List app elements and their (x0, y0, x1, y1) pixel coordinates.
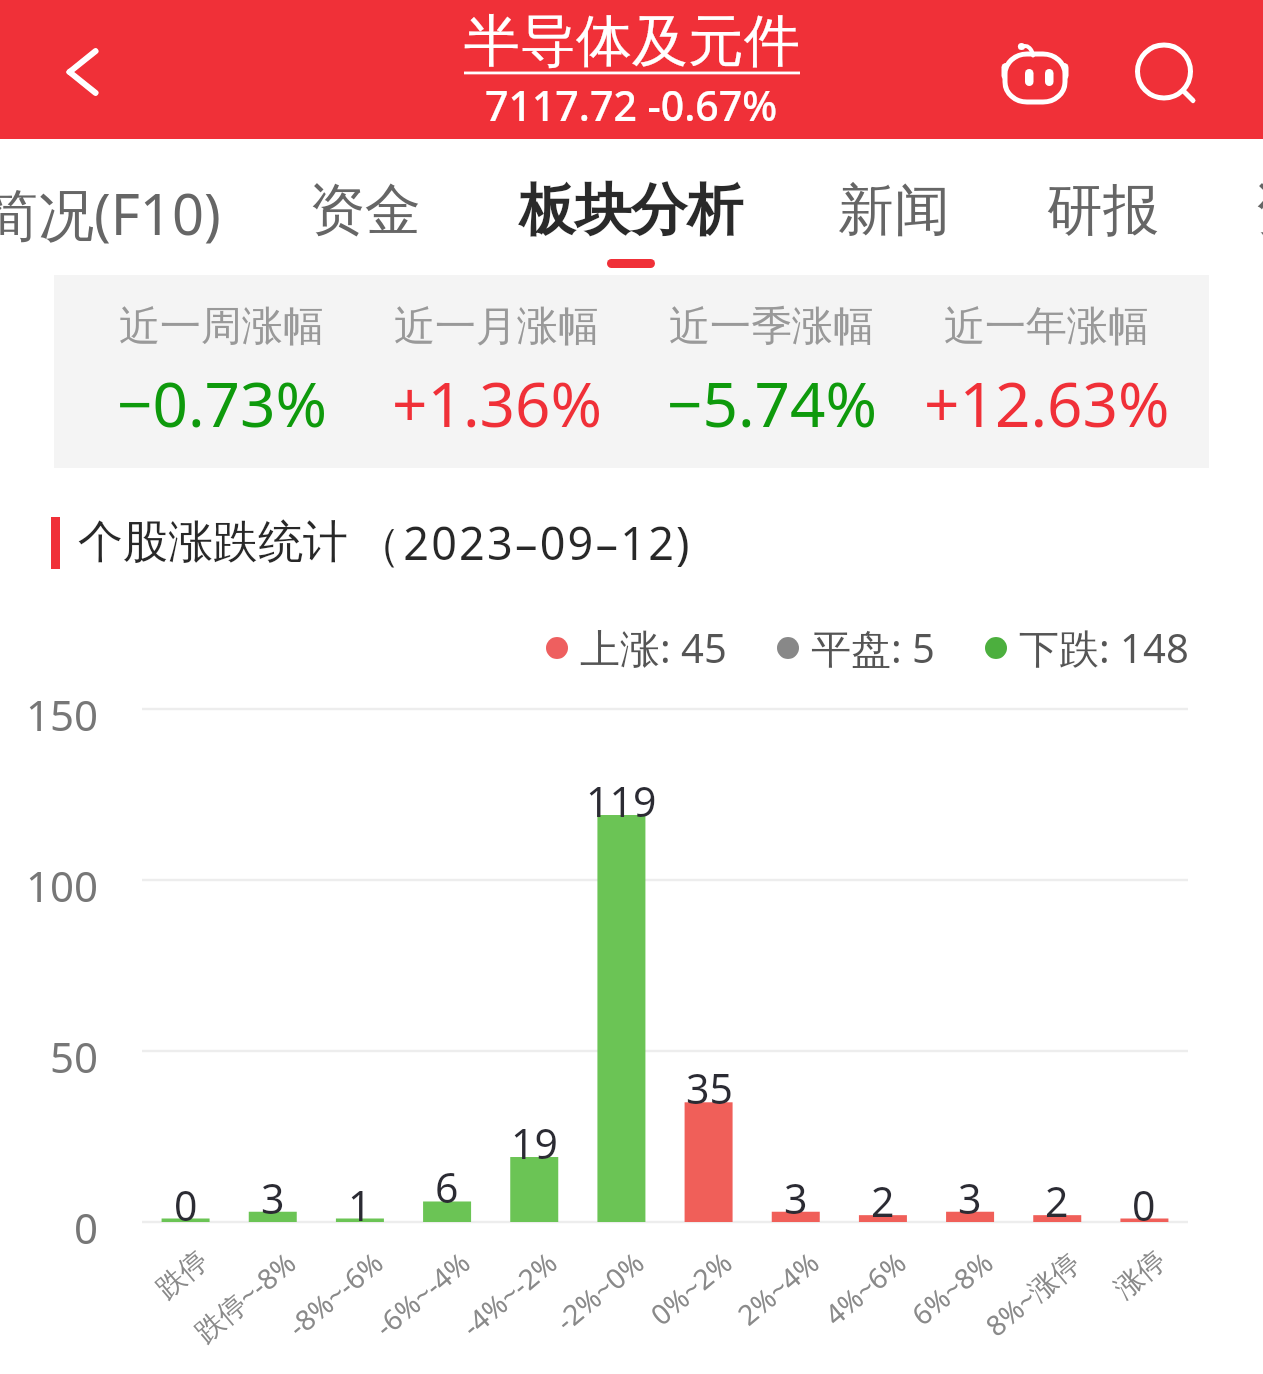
staticText: −0.73% (117, 361, 327, 445)
staticText: -4%~-2% (453, 1243, 564, 1345)
staticText: 150 (25, 686, 98, 743)
button[interactable]: 1 (300, 1177, 420, 1233)
staticText: 上涨: 45 (580, 620, 727, 675)
button[interactable]: 平盘: 5 (777, 620, 935, 675)
staticText: 涨停 (1107, 1243, 1172, 1306)
staticText: 跌停~-8% (186, 1243, 303, 1350)
staticText: 0 (174, 1177, 198, 1233)
staticText: 19 (511, 1115, 558, 1171)
button[interactable]: 近一月涨幅 (359, 301, 634, 445)
button[interactable]: 个股涨跌统计 (51, 512, 692, 573)
staticText: 7117.72 -0.67% (485, 77, 778, 133)
staticText: -6%~-4% (366, 1243, 477, 1345)
button[interactable]: 近一年涨幅 (909, 301, 1184, 445)
staticText: 119 (586, 773, 657, 829)
staticText: 研报 (1047, 175, 1159, 246)
staticText: 1 (348, 1177, 372, 1233)
button[interactable]: 3 (213, 1170, 333, 1226)
button[interactable]: Back (40, 30, 124, 114)
button[interactable]: 板块分析 (519, 139, 743, 268)
staticText: 6 (435, 1159, 459, 1215)
staticText: 2 (1045, 1173, 1069, 1229)
staticText: 0 (73, 1199, 98, 1256)
staticText: 板块分析 (519, 175, 743, 246)
staticText: 简况(F10) (0, 175, 221, 251)
button[interactable]: AI assistant (985, 27, 1085, 119)
staticText: 50 (49, 1028, 98, 1085)
staticText: 3 (958, 1170, 982, 1226)
button[interactable]: 研报 (1047, 139, 1159, 259)
button[interactable]: 2 (997, 1173, 1117, 1229)
button[interactable]: 3 (736, 1170, 856, 1226)
button[interactable]: 0 (1084, 1177, 1204, 1233)
staticText: 0%~2% (642, 1243, 739, 1333)
button[interactable]: 19 (474, 1115, 594, 1171)
staticText: 新闻 (838, 175, 950, 246)
staticText: 100 (25, 857, 98, 914)
button[interactable]: 下跌: 148 (985, 620, 1189, 675)
staticText: 近一周涨幅 (119, 301, 324, 353)
staticText: 2 (871, 1173, 895, 1229)
staticText: 4%~6% (816, 1243, 913, 1333)
staticText: +1.36% (392, 361, 602, 445)
button[interactable]: 新闻 (838, 139, 950, 259)
staticText: 35 (686, 1060, 733, 1116)
button[interactable]: Search (1120, 26, 1210, 118)
button[interactable]: 近一季涨幅 (634, 301, 909, 445)
button[interactable]: 119 (561, 773, 681, 829)
staticText: 3 (784, 1170, 808, 1226)
staticText: 近一月涨幅 (394, 301, 599, 353)
button[interactable]: 0 (126, 1177, 246, 1233)
staticText: 3 (261, 1170, 285, 1226)
button[interactable]: 6 (387, 1159, 507, 1215)
staticText: -2%~0% (547, 1243, 651, 1339)
button[interactable]: 资 (1254, 139, 1263, 259)
staticText: （2023–09–12) (356, 512, 692, 573)
button[interactable]: 简况(F10) (0, 139, 221, 264)
staticText: −5.74% (667, 361, 877, 445)
staticText: -8%~-6% (279, 1243, 390, 1345)
staticText: +12.63% (924, 361, 1170, 445)
staticText: 下跌: 148 (1019, 620, 1189, 675)
staticText: 半导体及元件 (464, 6, 800, 77)
staticText: 资 (1254, 175, 1263, 246)
staticText: 近一年涨幅 (944, 301, 1149, 353)
staticText: 2%~4% (729, 1243, 826, 1333)
staticText: 资金 (309, 175, 421, 246)
staticText: 跌停 (149, 1243, 214, 1306)
button[interactable]: 近一周涨幅 (84, 301, 359, 445)
staticText: 0 (1132, 1177, 1156, 1233)
staticText: 8%~涨停 (977, 1243, 1087, 1344)
button[interactable]: 资金 (309, 139, 421, 259)
staticText: 近一季涨幅 (669, 301, 874, 353)
button[interactable]: 上涨: 45 (546, 620, 727, 675)
staticText: 6%~8% (903, 1243, 1000, 1333)
button[interactable]: 3 (910, 1170, 1030, 1226)
button[interactable]: 35 (649, 1060, 769, 1116)
staticText: 平盘: 5 (811, 620, 935, 675)
staticText: 个股涨跌统计 (78, 514, 348, 571)
button[interactable]: 2 (823, 1173, 943, 1229)
